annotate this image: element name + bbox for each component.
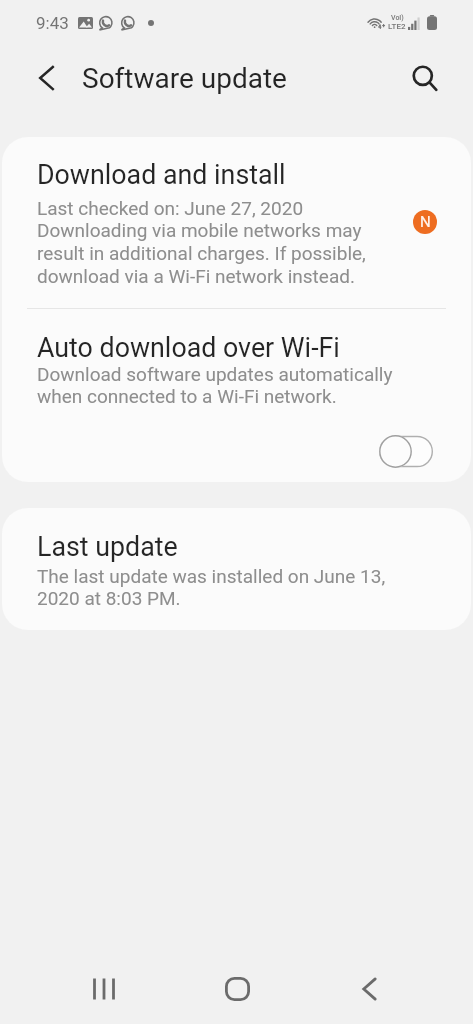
button[interactable]: Download and install [2,137,471,308]
staticText: Download and install [37,159,286,190]
staticText: Auto download over Wi-Fi [37,332,340,363]
staticText: LTE2 [388,22,406,31]
button[interactable]: Last update [2,508,471,630]
button[interactable]: Auto download over Wi-Fi [379,435,433,468]
staticText: VoI) [391,14,404,22]
staticText: N [420,213,431,231]
button[interactable]: Navigate up [22,58,70,106]
button[interactable]: Recent apps [68,958,140,1020]
button[interactable]: Search [401,58,449,106]
staticText: 9:43 [36,13,69,33]
staticText: Last checked on: June 27, 2020 Downloadi… [37,197,400,288]
staticText: Last update [37,531,178,562]
button[interactable]: Auto download over Wi-Fi [2,309,471,482]
staticText: Download software updates automatically … [37,363,400,408]
staticText: Software update [82,62,287,95]
button[interactable]: Back [333,958,405,1020]
staticText: The last update was installed on June 13… [37,565,400,610]
button[interactable]: Home [201,958,273,1020]
